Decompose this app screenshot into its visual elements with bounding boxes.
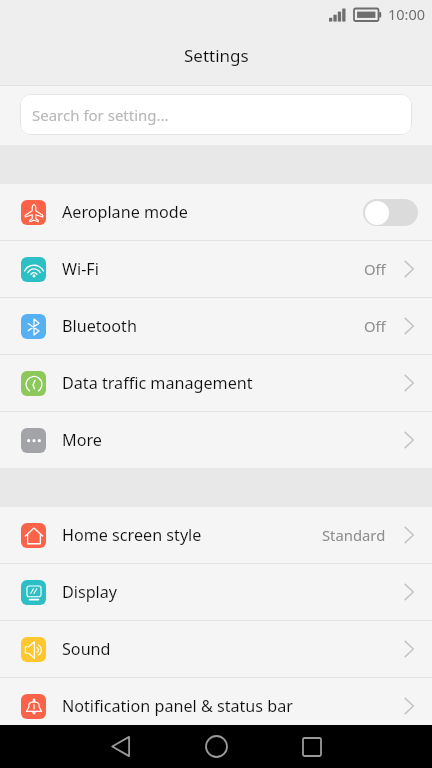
staticText: Off: [364, 316, 386, 336]
staticText: More: [62, 429, 102, 451]
button[interactable]: Recent apps: [264, 725, 360, 768]
staticText: Off: [364, 259, 386, 279]
button[interactable]: Home screen style: [0, 507, 432, 563]
staticText: Search for setting...: [32, 105, 169, 125]
button[interactable]: Notification panel & status bar: [0, 678, 432, 725]
staticText: Wi-Fi: [62, 258, 99, 280]
button[interactable]: Wi-Fi: [0, 241, 432, 297]
staticText: Home screen style: [62, 524, 202, 546]
button[interactable]: Display: [0, 564, 432, 620]
button[interactable]: Aeroplane mode toggle: [363, 199, 418, 226]
staticText: Notification panel & status bar: [62, 695, 293, 717]
staticText: Settings: [184, 44, 249, 67]
staticText: Data traffic management: [62, 372, 253, 394]
button[interactable]: Search for setting...: [20, 94, 412, 135]
button[interactable]: Sound: [0, 621, 432, 677]
button[interactable]: More: [0, 412, 432, 468]
button[interactable]: Data traffic management: [0, 355, 432, 411]
staticText: Aeroplane mode: [62, 201, 188, 223]
button[interactable]: Home: [168, 725, 264, 768]
button[interactable]: Bluetooth: [0, 298, 432, 354]
staticText: 10:00: [388, 4, 426, 24]
button[interactable]: Aeroplane mode: [0, 184, 432, 240]
staticText: Bluetooth: [62, 315, 137, 337]
staticText: Standard: [322, 525, 386, 545]
staticText: Sound: [62, 638, 111, 660]
button[interactable]: Back: [72, 725, 168, 768]
staticText: Display: [62, 581, 118, 603]
